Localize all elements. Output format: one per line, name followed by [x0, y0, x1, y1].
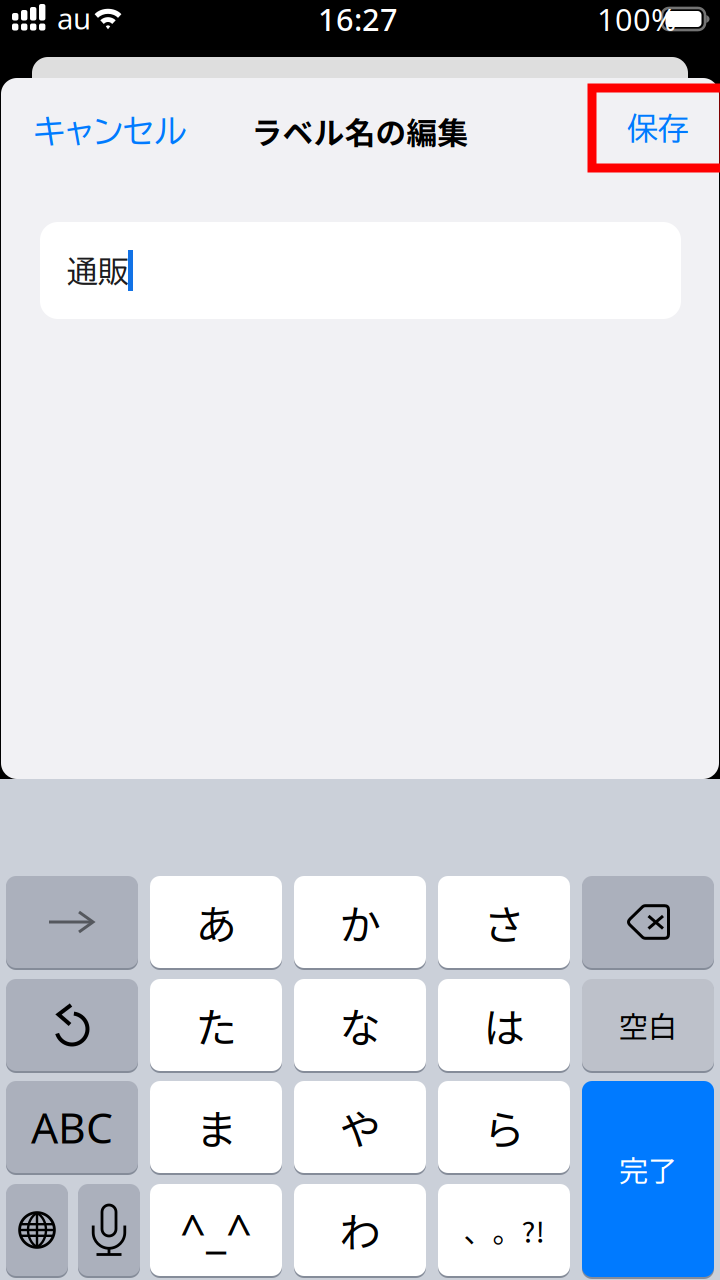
button[interactable]: 完了 — [582, 1080, 714, 1278]
button[interactable]: あ — [150, 875, 282, 969]
button[interactable]: Dictation — [78, 1183, 140, 1277]
staticText: は — [483, 995, 524, 1055]
staticText: ま — [195, 1097, 236, 1157]
button[interactable]: 空白 — [582, 978, 714, 1072]
staticText: ら — [483, 1097, 524, 1157]
staticText: わ — [339, 1200, 380, 1260]
button[interactable]: わ — [294, 1183, 426, 1277]
staticText: か — [339, 892, 380, 952]
staticText: ^_^ — [180, 1200, 252, 1260]
button[interactable]: 保存 — [592, 88, 720, 168]
staticText: あ — [195, 892, 236, 952]
staticText: 、。?! — [463, 1209, 544, 1251]
staticText: た — [195, 995, 236, 1055]
button[interactable]: ^_^ — [150, 1183, 282, 1277]
button[interactable]: さ — [438, 875, 570, 969]
staticText: 保存 — [627, 113, 689, 143]
button[interactable]: キャンセル — [33, 98, 233, 164]
button[interactable]: や — [294, 1080, 426, 1174]
button[interactable]: Switch keyboard — [6, 1183, 68, 1277]
staticText: キャンセル — [33, 114, 187, 148]
button[interactable]: 、。?! — [438, 1183, 570, 1277]
staticText: さ — [483, 892, 524, 952]
button[interactable]: か — [294, 875, 426, 969]
staticText: 完了 — [619, 1148, 677, 1190]
staticText: 空白 — [619, 1004, 677, 1046]
staticText: 16:27 — [318, 0, 398, 39]
button[interactable]: は — [438, 978, 570, 1072]
staticText: au — [57, 0, 91, 37]
button[interactable]: ら — [438, 1080, 570, 1174]
button[interactable]: ま — [150, 1080, 282, 1174]
staticText: ABC — [31, 1099, 113, 1155]
staticText: や — [339, 1097, 380, 1157]
button[interactable]: た — [150, 978, 282, 1072]
button[interactable]: な — [294, 978, 426, 1072]
staticText: 通販 — [67, 256, 129, 286]
staticText: 100% — [597, 0, 676, 39]
button[interactable]: Undo — [6, 978, 138, 1072]
staticText: な — [339, 995, 380, 1055]
button[interactable]: Next — [6, 875, 138, 969]
button[interactable]: ABC — [6, 1080, 138, 1174]
staticText: ラベル名の編集 — [251, 109, 468, 153]
button[interactable]: Delete — [582, 875, 714, 969]
